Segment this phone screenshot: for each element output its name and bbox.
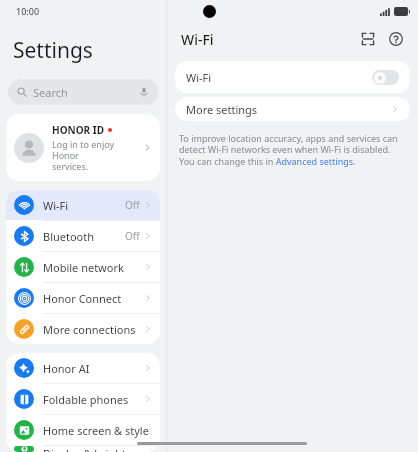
staticText: Foldable phones — [43, 392, 129, 407]
button[interactable]: HONOR ID — [6, 114, 160, 181]
staticText: Home screen & style — [43, 423, 149, 438]
staticText: Wi-Fi — [43, 198, 69, 213]
button[interactable]: Help — [384, 27, 408, 51]
staticText: Wi-Fi — [181, 30, 214, 49]
staticText: Search — [33, 85, 68, 100]
staticText: Bluetooth — [43, 229, 95, 244]
button[interactable]: Home screen & style — [6, 415, 160, 445]
staticText: Mobile network — [43, 260, 124, 275]
button[interactable]: Scan QR code — [356, 27, 380, 51]
staticText: HONOR ID — [52, 123, 104, 137]
staticText: Honor Connect — [43, 291, 122, 306]
staticText: Log in to enjoy Honor services. — [52, 138, 143, 172]
button[interactable]: Wi-Fi toggle, off — [372, 70, 399, 85]
button[interactable]: Honor Connect — [6, 283, 160, 313]
button[interactable]: Wi-Fi — [6, 190, 160, 220]
staticText: Off — [125, 198, 140, 212]
button[interactable]: More connections — [6, 314, 160, 344]
button[interactable]: Search — [8, 79, 158, 105]
staticText: Wi-Fi — [186, 70, 212, 85]
button[interactable]: Foldable phones — [6, 384, 160, 414]
button[interactable]: Mobile network — [6, 252, 160, 282]
staticText: More connections — [43, 322, 136, 337]
button[interactable]: Display & brightness — [6, 446, 160, 452]
staticText: To improve location accuracy, apps and s… — [179, 132, 406, 168]
staticText: Off — [125, 229, 140, 243]
staticText: More settings — [186, 102, 258, 117]
staticText: 10:00 — [16, 5, 40, 17]
staticText: Honor AI — [43, 361, 90, 376]
staticText: Settings — [13, 36, 93, 65]
button[interactable]: More settings — [175, 97, 410, 121]
button[interactable]: Honor AI — [6, 353, 160, 383]
button[interactable]: Bluetooth — [6, 221, 160, 251]
button[interactable]: Wi-Fi — [175, 61, 410, 93]
staticText: Display & brightness — [43, 446, 150, 452]
